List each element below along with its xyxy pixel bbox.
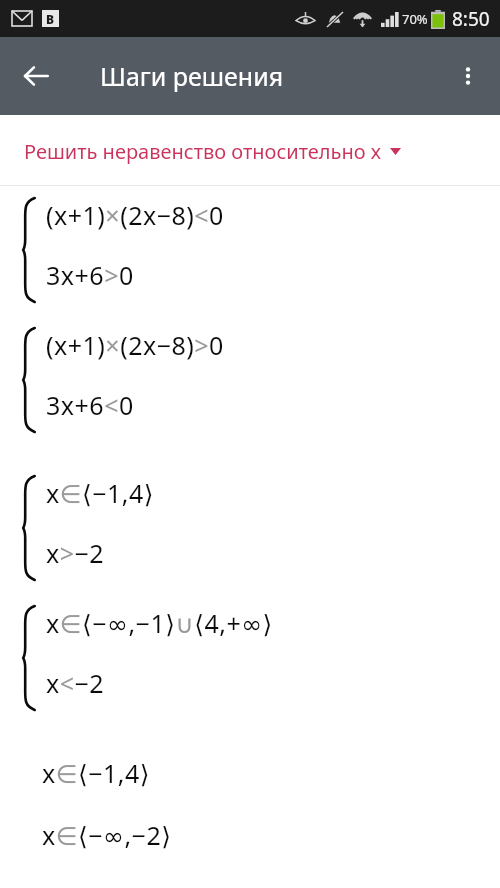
button[interactable]: More options [444, 52, 492, 100]
staticText: Шаги решения [100, 59, 284, 93]
staticText: x∈⟨−1,4⟩ [46, 476, 155, 510]
staticText: x∈⟨−∞,−1⟩∪⟨4,+∞⟩ [46, 606, 273, 640]
staticText: x<−2 [46, 666, 105, 700]
staticText: 8:50 [452, 6, 490, 32]
staticText: x∈⟨−1,4⟩ [42, 756, 151, 790]
staticText: (x+1)×(2x−8)>0 [46, 328, 224, 362]
staticText: 3x+6<0 [46, 388, 134, 422]
staticText: x>−2 [46, 536, 105, 570]
staticText: Решить неравенство относительно х [24, 138, 382, 165]
staticText: B [46, 11, 55, 27]
staticText: x∈⟨−∞,−2⟩ [42, 818, 172, 852]
staticText: 3x+6>0 [46, 258, 134, 292]
button[interactable]: Решить неравенство относительно х [0, 117, 500, 185]
staticText: (x+1)×(2x−8)<0 [46, 198, 224, 232]
button[interactable]: Back [12, 52, 60, 100]
staticText: 70% [402, 10, 428, 28]
